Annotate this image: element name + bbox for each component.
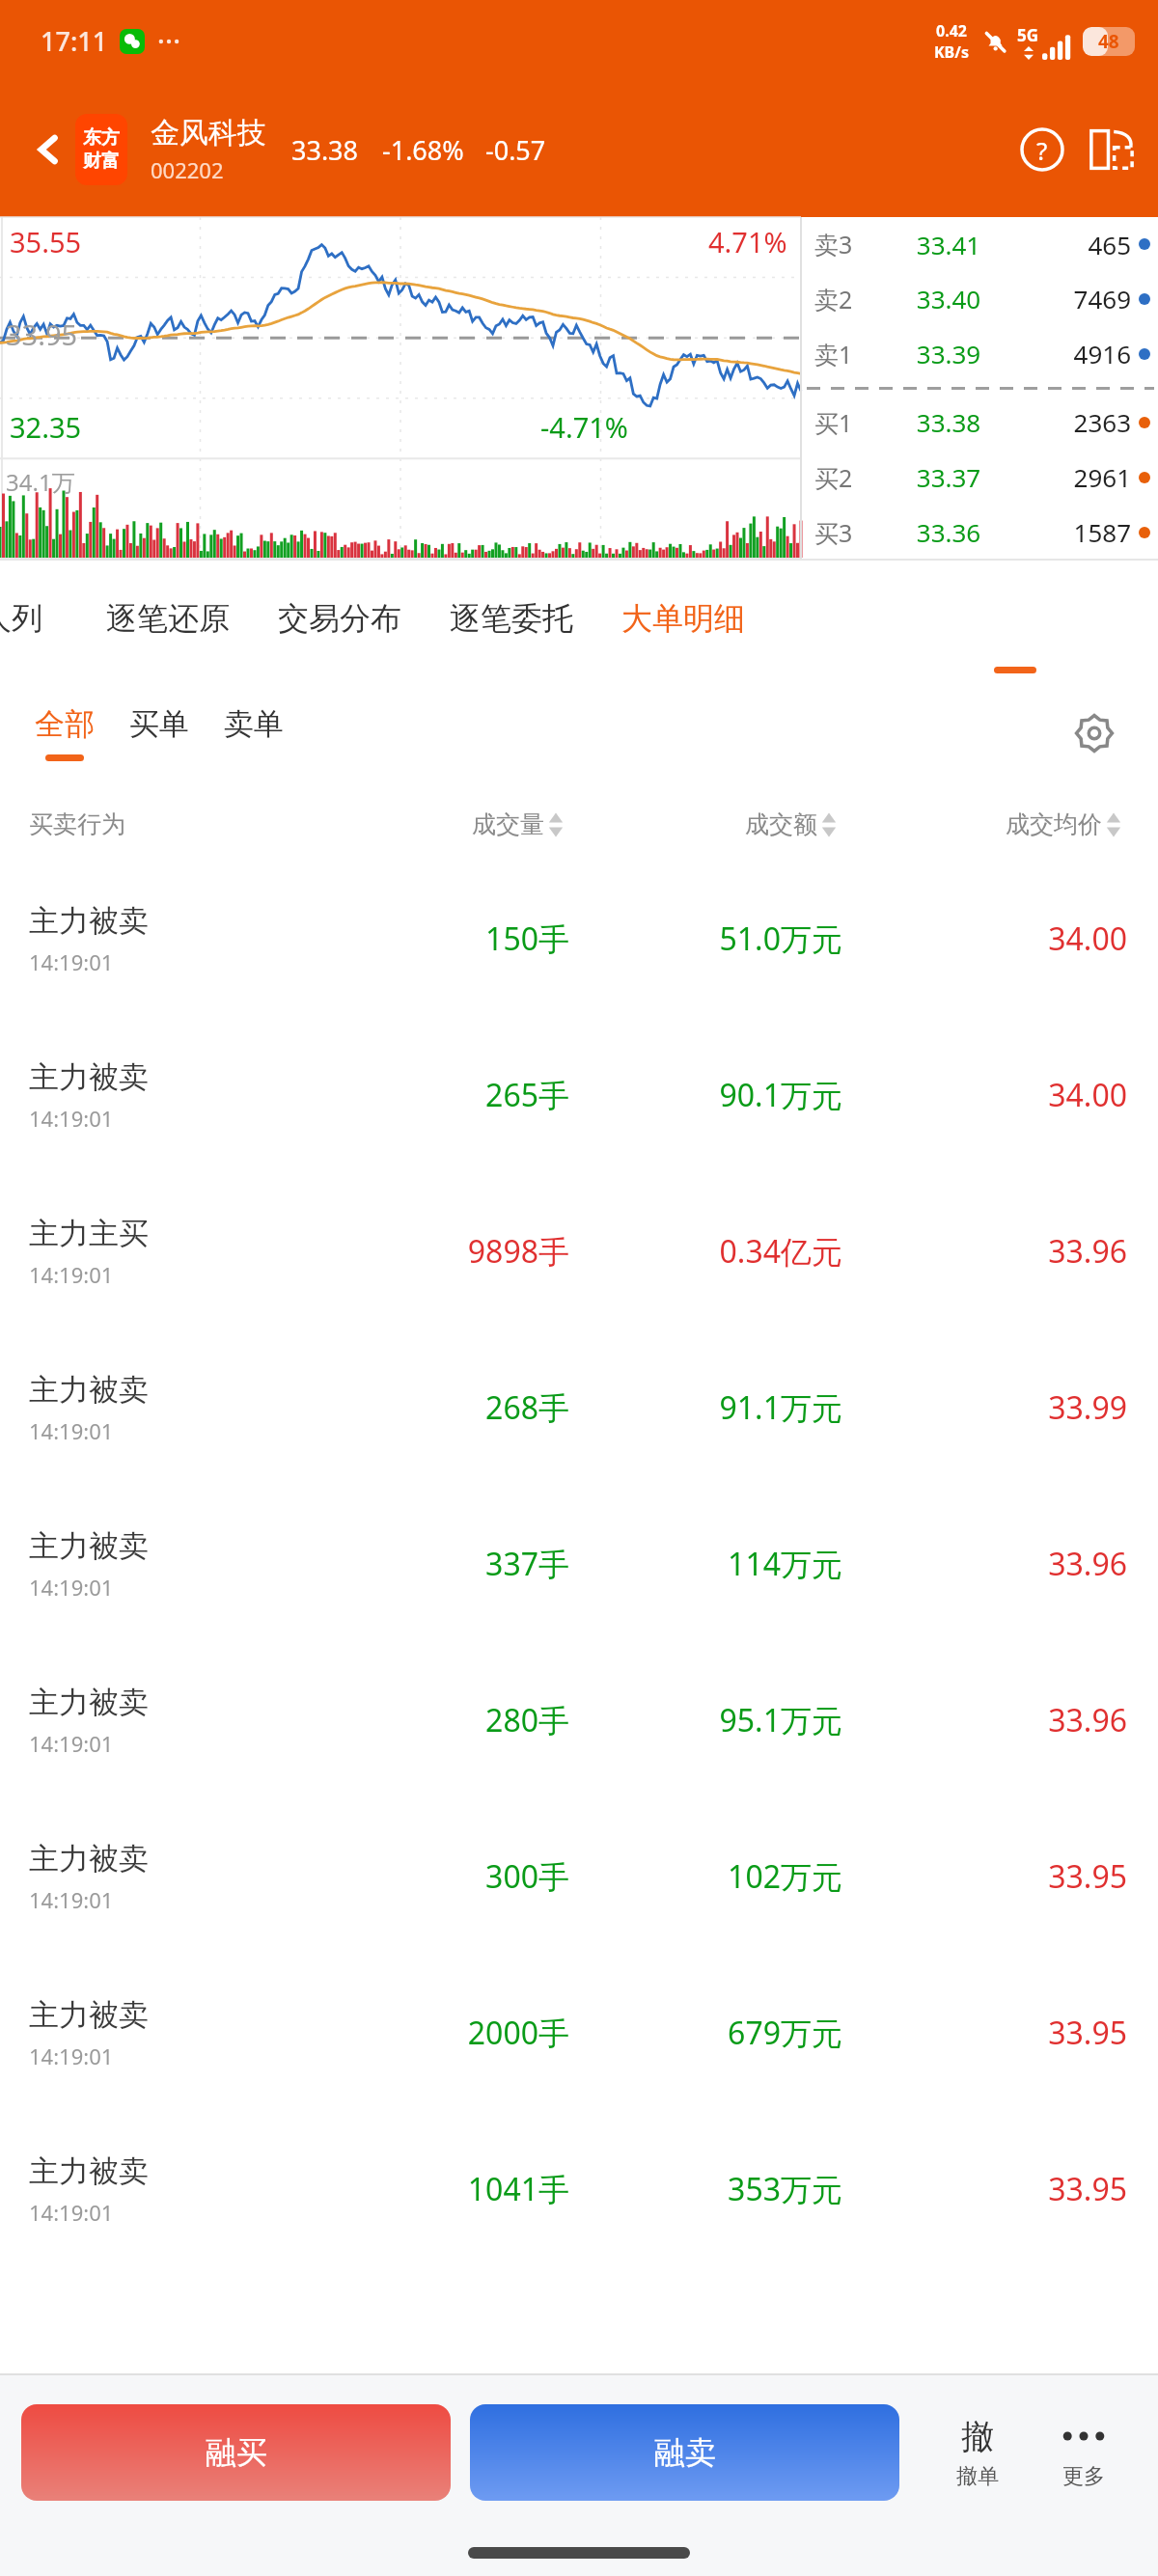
staticText: 002202 xyxy=(151,155,224,184)
button[interactable]: 全部 xyxy=(35,705,95,761)
staticText: 34.1万 xyxy=(6,466,75,498)
staticText: 679万元 xyxy=(592,2012,842,2054)
staticText: 95.1万元 xyxy=(592,1699,842,1741)
staticText: 465 xyxy=(1034,228,1131,261)
staticText: 主力被卖 xyxy=(29,902,149,940)
staticText: 14:19:01 xyxy=(29,2042,114,2070)
staticText: 成交量 xyxy=(472,809,544,839)
staticText: 14:19:01 xyxy=(29,1573,114,1602)
staticText: 2000手 xyxy=(338,2012,569,2054)
button[interactable]: Settings xyxy=(1065,704,1123,762)
staticText: 买2 xyxy=(814,461,853,494)
staticText: 卖3 xyxy=(814,228,853,260)
staticText: 33.37 xyxy=(863,460,1034,494)
staticText: 9898手 xyxy=(338,1230,569,1273)
staticText: 337手 xyxy=(338,1543,569,1585)
button[interactable]: Back xyxy=(21,123,75,177)
staticText: 买卖行为 xyxy=(29,809,125,839)
staticText: 14:19:01 xyxy=(29,2198,114,2227)
staticText: 114万元 xyxy=(592,1543,842,1585)
staticText: 融卖 xyxy=(654,2433,716,2472)
staticText: 4916 xyxy=(1034,337,1131,370)
staticText: 卖单 xyxy=(224,705,284,743)
staticText: 33.95 xyxy=(6,315,78,353)
staticText: 买1 xyxy=(814,406,853,439)
button[interactable]: 逐笔还原 xyxy=(106,599,230,638)
staticText: 金风科技 xyxy=(151,115,266,151)
button[interactable]: 撤 xyxy=(924,2416,1031,2490)
staticText: 主力被卖 xyxy=(29,1527,149,1565)
staticText: 34.00 xyxy=(915,918,1127,960)
staticText: 33.95 xyxy=(915,2012,1127,2054)
button[interactable]: 更多 xyxy=(1031,2415,1137,2490)
staticText: 150手 xyxy=(338,918,569,960)
button[interactable]: 交易分布 xyxy=(278,599,401,638)
staticText: 大单明细 xyxy=(621,599,745,638)
button[interactable]: 卖1 xyxy=(801,326,1158,381)
button[interactable]: 主力被卖 xyxy=(0,1798,1158,1955)
button[interactable]: 成交均价 xyxy=(1006,809,1121,839)
staticText: ? xyxy=(1036,133,1048,167)
staticText: 0.34亿元 xyxy=(592,1230,842,1273)
staticText: 财富 xyxy=(83,150,120,173)
button[interactable]: 买单 xyxy=(129,705,189,761)
staticText: 14:19:01 xyxy=(29,1260,114,1289)
button[interactable]: 逐笔委托 xyxy=(450,599,573,638)
staticText: 33.41 xyxy=(863,228,1034,261)
button[interactable]: 卖单 xyxy=(224,705,284,761)
button[interactable]: 主力被卖 xyxy=(0,1642,1158,1798)
staticText: 卖1 xyxy=(814,338,853,370)
button[interactable]: 主力被卖 xyxy=(0,1017,1158,1173)
staticText: -1.68% xyxy=(382,132,464,168)
staticText: 265手 xyxy=(338,1074,569,1116)
staticText: 1587 xyxy=(1034,515,1131,549)
button[interactable]: 主力被卖 xyxy=(0,2111,1158,2267)
staticText: -0.57 xyxy=(485,132,546,168)
staticText: 33.39 xyxy=(863,337,1034,370)
staticText: 91.1万元 xyxy=(592,1386,842,1429)
button[interactable]: 主力被卖 xyxy=(0,1955,1158,2111)
staticText: 51.0万元 xyxy=(592,918,842,960)
staticText: 34.00 xyxy=(915,1074,1127,1116)
button[interactable]: 买1 xyxy=(801,395,1158,450)
staticText: 33.95 xyxy=(915,2168,1127,2210)
button[interactable]: 融卖 xyxy=(470,2404,899,2501)
button[interactable]: 主力被卖 xyxy=(0,861,1158,1017)
button[interactable]: 卖3 xyxy=(801,217,1158,271)
staticText: 撤 xyxy=(961,2416,994,2457)
staticText: 主力被卖 xyxy=(29,1684,149,1721)
staticText: 买3 xyxy=(814,516,853,549)
button[interactable]: 金风科技 xyxy=(151,115,266,184)
button[interactable]: 融买 xyxy=(21,2404,451,2501)
button[interactable]: 主力被卖 xyxy=(0,1486,1158,1642)
button[interactable]: 买2 xyxy=(801,450,1158,505)
staticText: 33.95 xyxy=(915,1855,1127,1898)
staticText: 主力被卖 xyxy=(29,2152,149,2190)
staticText: 90.1万元 xyxy=(592,1074,842,1116)
staticText: 0.42 xyxy=(936,20,967,41)
button[interactable]: 买3 xyxy=(801,505,1158,560)
staticText: 14:19:01 xyxy=(29,1104,114,1133)
button[interactable]: 卖2 xyxy=(801,271,1158,326)
staticText: 353万元 xyxy=(592,2168,842,2210)
staticText: 14:19:01 xyxy=(29,1885,114,1914)
button[interactable]: 主力被卖 xyxy=(0,1329,1158,1486)
staticText: 280手 xyxy=(338,1699,569,1741)
button[interactable]: 大单明细 xyxy=(621,599,745,638)
staticText: 48 xyxy=(1098,29,1119,54)
button[interactable]: Rotate screen xyxy=(1087,124,1137,175)
button[interactable]: 主力主买 xyxy=(0,1173,1158,1329)
button[interactable]: 成交额 xyxy=(745,809,837,839)
staticText: 102万元 xyxy=(592,1855,842,1898)
staticText: 7469 xyxy=(1034,282,1131,315)
staticText: 14:19:01 xyxy=(29,1729,114,1758)
button[interactable]: 人列 xyxy=(0,599,42,638)
staticText: 成交均价 xyxy=(1006,809,1102,839)
staticText: 5G xyxy=(1017,24,1039,46)
staticText: 33.36 xyxy=(863,515,1034,549)
staticText: 33.38 xyxy=(291,132,359,168)
button[interactable]: 成交量 xyxy=(472,809,564,839)
button[interactable]: Help xyxy=(1017,124,1067,175)
staticText: 2961 xyxy=(1034,460,1131,494)
staticText: 33.96 xyxy=(915,1699,1127,1741)
